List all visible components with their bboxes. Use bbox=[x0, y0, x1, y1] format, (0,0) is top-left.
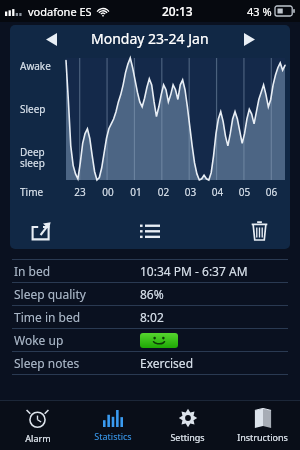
button[interactable]: Sleep notes bbox=[0, 352, 300, 374]
staticText: 23 bbox=[66, 185, 94, 199]
staticText: 8:02 bbox=[140, 309, 164, 325]
staticText: 01 bbox=[122, 185, 150, 199]
staticText: Exercised bbox=[140, 355, 194, 371]
staticText: Time bbox=[20, 185, 44, 199]
button[interactable]: Sleep quality bbox=[0, 283, 300, 305]
staticText: 00 bbox=[94, 185, 122, 199]
staticText: 02 bbox=[150, 185, 177, 199]
staticText: 43 % bbox=[247, 4, 272, 19]
button[interactable]: Next day bbox=[236, 26, 262, 52]
staticText: 06 bbox=[258, 185, 285, 199]
button[interactable]: Woke up bbox=[0, 329, 300, 351]
staticText: Instructions bbox=[237, 431, 288, 443]
staticText: Monday 23-24 Jan bbox=[91, 29, 209, 48]
button[interactable]: Settings bbox=[150, 401, 225, 450]
staticText: Time in bed bbox=[14, 309, 81, 325]
button[interactable]: Time in bed bbox=[0, 306, 300, 328]
staticText: 20:13 bbox=[162, 3, 193, 19]
staticText: Alarm bbox=[25, 432, 51, 444]
button[interactable]: List bbox=[133, 214, 167, 248]
staticText: Woke up bbox=[14, 332, 64, 348]
button[interactable]: Share bbox=[24, 214, 58, 248]
button[interactable]: Delete bbox=[242, 214, 276, 248]
button[interactable]: Previous day bbox=[38, 26, 64, 52]
button[interactable]: In bed bbox=[0, 260, 300, 282]
staticText: 04 bbox=[204, 185, 231, 199]
staticText: Sleep notes bbox=[14, 355, 80, 371]
staticText: In bed bbox=[14, 263, 51, 279]
staticText: vodafone ES bbox=[28, 4, 92, 19]
staticText: Statistics bbox=[94, 430, 132, 442]
staticText: 05 bbox=[231, 185, 258, 199]
staticText: 10:34 PM - 6:37 AM bbox=[140, 263, 248, 279]
staticText: Deep sleep bbox=[20, 145, 45, 170]
staticText: Sleep bbox=[20, 102, 46, 116]
button[interactable]: Instructions bbox=[225, 401, 300, 450]
staticText: 86% bbox=[140, 286, 164, 302]
staticText: 03 bbox=[177, 185, 204, 199]
staticText: Settings bbox=[170, 431, 205, 443]
button[interactable]: Alarm bbox=[0, 401, 75, 450]
staticText: Sleep quality bbox=[14, 286, 86, 302]
staticText: Awake bbox=[20, 59, 51, 73]
button[interactable]: Statistics bbox=[75, 401, 150, 450]
